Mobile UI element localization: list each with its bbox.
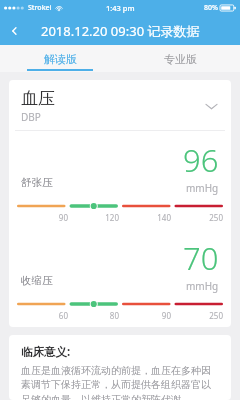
staticText: 60 [17,310,68,321]
staticText: 2018.12.20 09:30 记录数据 [41,22,200,40]
staticText: 舒张压 [21,176,183,189]
staticText: 250 [171,212,223,223]
staticText: 90 [119,310,171,321]
staticText: 90 [17,212,68,223]
staticText: 专业版 [164,52,197,66]
staticText: mmHg [186,279,219,293]
staticText: 80 [68,310,119,321]
staticText: 血压是血液循环流动的前提，血压在多种因素调节下保持正常，从而提供各组织器官以足够… [21,364,219,400]
staticText: 70 [183,237,219,279]
button[interactable]: 专业版 [120,45,240,72]
staticText: 解读版 [44,52,77,66]
staticText: Strokei [28,3,52,13]
staticText: 收缩压 [21,274,183,287]
other: Expand [201,96,221,116]
staticText: 120 [68,212,119,223]
button[interactable]: 解读版 [0,45,120,72]
staticText: 血压 [21,88,55,109]
staticText: 1:43 pm [106,3,135,13]
staticText: 250 [171,310,223,321]
staticText: 140 [119,212,171,223]
staticText: 80% [204,3,218,13]
staticText: 96 [183,139,219,181]
button[interactable]: 血压 [9,80,231,130]
staticText: mmHg [186,181,219,195]
staticText: DBP [21,110,41,124]
button[interactable]: Back [0,16,30,45]
staticText: 临床意义: [21,344,71,360]
